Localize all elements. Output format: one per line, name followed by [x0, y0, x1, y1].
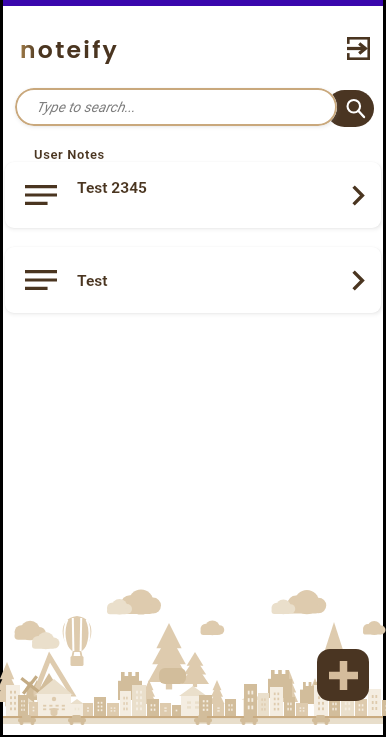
staticText: noteify: [20, 33, 120, 66]
staticText: Type to search...: [36, 99, 136, 115]
staticText: Test 2345: [77, 179, 147, 197]
button[interactable]: Search: [326, 90, 374, 127]
button[interactable]: Add note: [317, 649, 369, 701]
staticText: Test: [77, 272, 108, 290]
staticText: User Notes: [34, 147, 105, 162]
button[interactable]: Type to search...: [15, 88, 337, 126]
button[interactable]: Test 2345: [5, 162, 381, 228]
button[interactable]: Logout: [340, 30, 376, 66]
button[interactable]: Test: [5, 247, 381, 313]
